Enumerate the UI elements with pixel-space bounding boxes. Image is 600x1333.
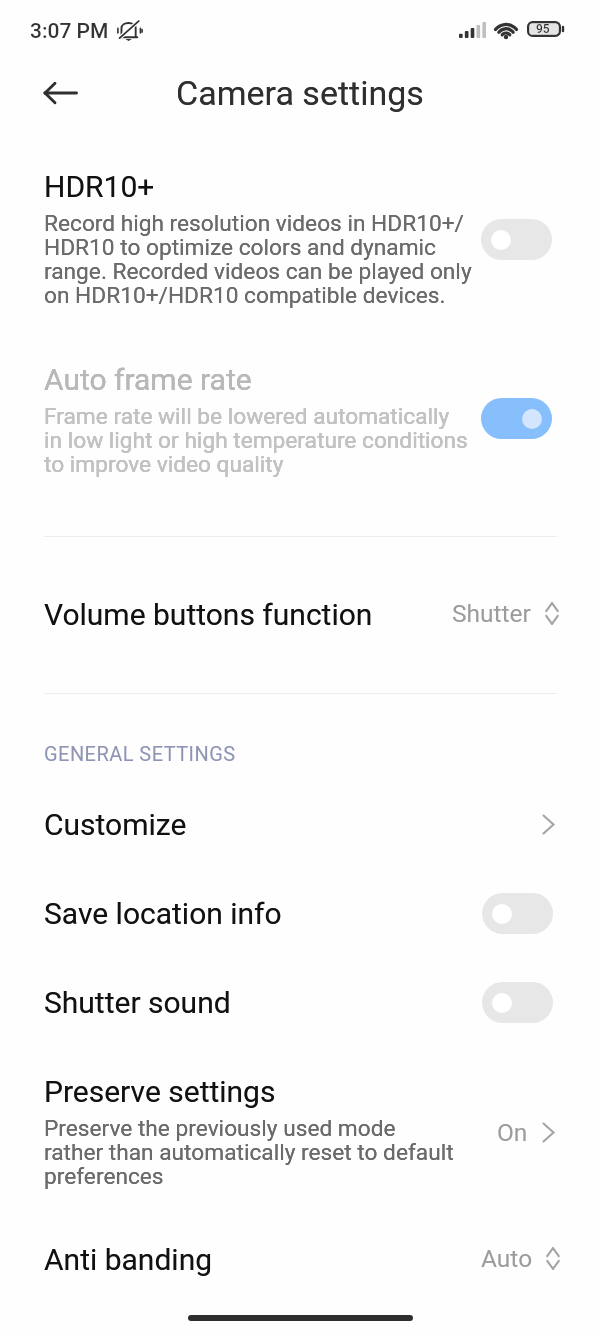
button[interactable]: Switch off (481, 219, 552, 260)
staticText: Auto (481, 1244, 533, 1273)
staticText: Camera settings (0, 73, 600, 113)
staticText: Shutter sound (44, 985, 231, 1020)
staticText: Customize (44, 807, 187, 842)
button[interactable]: Customize (0, 780, 600, 869)
staticText: Preserve the previously used mode rather… (44, 1115, 454, 1190)
staticText: 95 (536, 22, 550, 36)
staticText: Anti banding (44, 1242, 213, 1277)
staticText: Auto frame rate (44, 362, 252, 397)
staticText: Shutter sound (44, 985, 231, 1020)
button[interactable]: Preserve settings (0, 1057, 600, 1207)
staticText: Save location info (44, 896, 282, 931)
staticText: Record high resolution videos in HDR10+/… (44, 210, 472, 309)
button[interactable]: Volume buttons function (0, 537, 600, 693)
staticText: 3:07 PM (30, 19, 109, 44)
staticText: Preserve settings (44, 1074, 276, 1109)
staticText: GENERAL SETTINGS (44, 742, 236, 765)
staticText: HDR10+ (44, 169, 155, 204)
staticText: Frame rate will be lowered automatically… (44, 403, 468, 478)
button[interactable]: Auto frame rate (0, 345, 600, 495)
button[interactable]: Switch off (482, 982, 553, 1023)
button[interactable]: Save location info (0, 869, 600, 958)
button[interactable]: Switch on (481, 398, 552, 439)
staticText: HDR10+ (44, 169, 155, 204)
staticText: Frame rate will be lowered automatically… (44, 403, 468, 478)
button[interactable]: Switch off (482, 893, 553, 934)
staticText: Preserve the previously used mode rather… (44, 1115, 454, 1190)
staticText: Auto frame rate (44, 362, 252, 397)
staticText: Volume buttons function (44, 597, 373, 632)
staticText: Shutter (452, 599, 531, 628)
staticText: Record high resolution videos in HDR10+/… (44, 210, 472, 309)
staticText: Save location info (44, 896, 282, 931)
staticText: Camera settings (0, 73, 600, 113)
staticText: On (497, 1118, 528, 1147)
staticText: Customize (44, 807, 187, 842)
button[interactable]: Shutter sound (0, 958, 600, 1047)
staticText: Volume buttons function (44, 597, 373, 632)
staticText: Anti banding (44, 1242, 213, 1277)
button[interactable]: Anti banding (0, 1226, 600, 1315)
staticText: Preserve settings (44, 1074, 276, 1109)
button[interactable]: HDR10+ (0, 152, 600, 327)
button[interactable]: Back (36, 69, 84, 117)
